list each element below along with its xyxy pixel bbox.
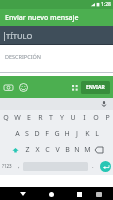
button[interactable]: X	[32, 143, 42, 157]
button[interactable]: Atrás	[18, 189, 28, 199]
button[interactable]: H	[62, 127, 72, 141]
button[interactable]: M	[82, 143, 92, 157]
staticText: P	[105, 113, 110, 123]
button[interactable]: J	[72, 127, 82, 141]
button[interactable]: A	[12, 127, 22, 141]
button[interactable]: C	[42, 143, 52, 157]
button[interactable]: S	[22, 127, 32, 141]
staticText: U	[70, 113, 76, 123]
button[interactable]: TÍTULO	[0, 26, 113, 45]
button[interactable]: Inicio	[46, 189, 56, 199]
button[interactable]: Y	[57, 111, 67, 125]
button[interactable]: Cambiar teclado	[94, 189, 104, 199]
staticText: S	[25, 129, 29, 139]
staticText: D	[34, 129, 40, 139]
staticText: DESCRIPCIÓN	[5, 53, 41, 60]
staticText: Y	[60, 113, 64, 123]
button[interactable]: D	[32, 127, 42, 141]
staticText: X	[35, 145, 40, 155]
staticText: TÍTULO	[6, 31, 33, 41]
button[interactable]: L	[92, 127, 102, 141]
button[interactable]: G	[52, 127, 62, 141]
staticText: K	[85, 129, 90, 139]
button[interactable]: Q	[1, 111, 11, 125]
staticText: I	[83, 113, 86, 123]
button[interactable]: O	[91, 111, 101, 125]
button[interactable]: Coma	[14, 159, 23, 173]
button[interactable]: ENVIAR	[81, 81, 110, 94]
staticText: H	[64, 129, 70, 139]
button[interactable]: ?123	[0, 159, 14, 173]
staticText: C	[45, 145, 50, 155]
staticText: 1:28	[101, 1, 111, 8]
button[interactable]: Retroceso	[92, 143, 105, 157]
staticText: A	[15, 129, 20, 139]
button[interactable]: I	[79, 111, 89, 125]
staticText: V	[55, 145, 60, 155]
staticText: E	[27, 113, 31, 123]
button[interactable]: Intro	[97, 159, 113, 173]
button[interactable]: Punto	[88, 159, 97, 173]
staticText: N	[74, 145, 80, 155]
staticText: J	[76, 129, 78, 139]
staticText: B	[65, 145, 70, 155]
button[interactable]: DESCRIPCIÓN	[0, 45, 113, 73]
button[interactable]: W	[12, 111, 22, 125]
staticText: O	[93, 113, 99, 123]
staticText: L	[95, 129, 99, 139]
staticText: ENVIAR	[86, 84, 105, 91]
button[interactable]: Enviar nuevo mensaje	[0, 9, 113, 26]
staticText: .	[92, 162, 94, 170]
staticText: Z	[25, 145, 30, 155]
staticText: W	[14, 113, 21, 123]
button[interactable]: F	[42, 127, 52, 141]
button[interactable]: P	[102, 111, 112, 125]
button[interactable]: Dictado por voz	[100, 100, 108, 108]
staticText: ?123	[2, 163, 12, 169]
button[interactable]: K	[82, 127, 92, 141]
staticText: ,	[18, 162, 20, 170]
button[interactable]: E	[24, 111, 34, 125]
button[interactable]: Mayúsculas	[9, 143, 22, 157]
button[interactable]: U	[68, 111, 78, 125]
staticText: T	[49, 113, 53, 123]
staticText: M	[84, 145, 91, 155]
staticText: R	[38, 113, 43, 123]
button[interactable]: R	[35, 111, 45, 125]
button[interactable]: Recientes	[74, 189, 84, 199]
button[interactable]: Adjuntar foto	[3, 82, 14, 93]
button[interactable]: Más opciones	[71, 84, 79, 92]
staticText: Enviar nuevo mensaje	[5, 13, 79, 23]
button[interactable]: V	[52, 143, 62, 157]
button[interactable]: B	[62, 143, 72, 157]
button[interactable]: N	[72, 143, 82, 157]
staticText: Q	[3, 113, 9, 123]
button[interactable]: T	[46, 111, 56, 125]
staticText: F	[45, 129, 49, 139]
button[interactable]: Emoji	[18, 82, 29, 93]
staticText: G	[54, 129, 60, 139]
button[interactable]: Z	[22, 143, 32, 157]
